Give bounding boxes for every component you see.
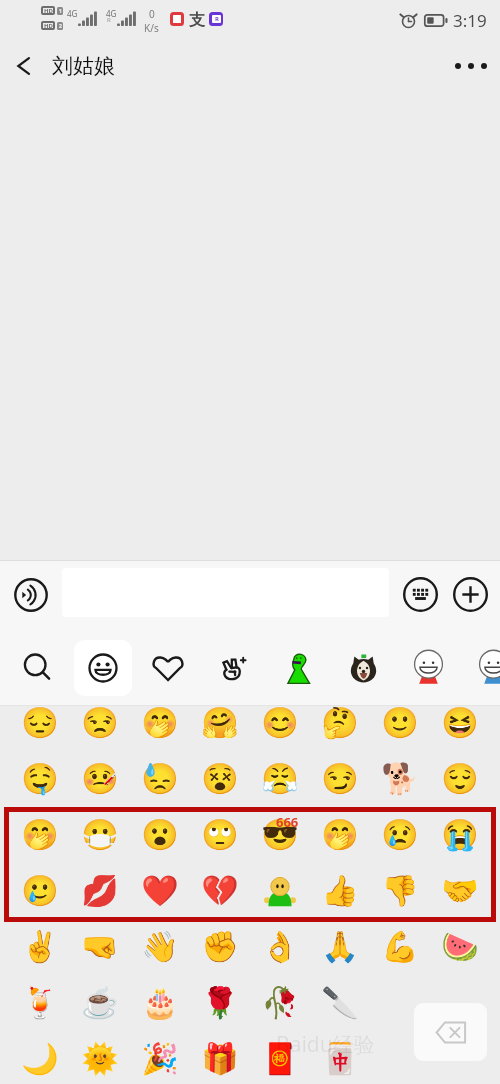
button[interactable]: Blue sticker pack — [464, 640, 500, 696]
button[interactable]: 🌹 — [190, 974, 250, 1030]
staticText: 🎂 — [141, 985, 179, 1020]
button[interactable]: Favourites — [139, 640, 197, 696]
staticText: 👍 — [321, 873, 359, 908]
staticText: 🙄 — [201, 817, 239, 852]
staticText: 🥲 — [21, 873, 59, 908]
button[interactable]: 🀄 — [310, 1030, 370, 1084]
staticText: 🍉 — [441, 929, 479, 964]
button[interactable]: 🤤 — [10, 750, 70, 806]
button[interactable]: 🌞 — [70, 1030, 130, 1084]
staticText: 😊 — [261, 705, 299, 740]
staticText: ✊ — [201, 929, 239, 964]
button[interactable]: 🙏 — [310, 918, 370, 974]
button[interactable]: 🐕 — [370, 750, 430, 806]
button[interactable]: 😔 — [10, 694, 70, 750]
button[interactable]: Smileys — [74, 640, 132, 696]
staticText: 🤗 — [201, 705, 239, 740]
button[interactable]: Red sticker pack — [399, 640, 457, 696]
button[interactable]: 😊 — [250, 694, 310, 750]
button[interactable]: ✊ — [190, 918, 250, 974]
button[interactable]: Search — [9, 640, 67, 696]
button[interactable]: More — [450, 574, 491, 615]
staticText: 😒 — [81, 705, 119, 740]
button[interactable]: Backspace — [414, 1003, 487, 1061]
staticText: 💔 — [201, 873, 239, 908]
button[interactable]: 😒 — [70, 694, 130, 750]
button[interactable]: 🤒 — [70, 750, 130, 806]
staticText: ☕ — [81, 985, 119, 1020]
button[interactable]: 🎉 — [130, 1030, 190, 1084]
staticText: 🤭 — [141, 705, 179, 740]
button[interactable]: 😎 — [250, 806, 310, 862]
staticText: 😆 — [441, 705, 479, 740]
button[interactable]: 😭 — [430, 806, 490, 862]
button[interactable]: Back — [0, 40, 48, 92]
button[interactable]: 🤝 — [430, 862, 490, 918]
button[interactable]: 🤭 — [310, 806, 370, 862]
button[interactable]: 😵 — [190, 750, 250, 806]
button[interactable]: 😷 — [70, 806, 130, 862]
button[interactable]: 👎 — [370, 862, 430, 918]
button[interactable]: 🎂 — [130, 974, 190, 1030]
button[interactable]: 😮 — [130, 806, 190, 862]
button[interactable]: Husky stickers — [334, 640, 392, 696]
button[interactable]: 😆 — [430, 694, 490, 750]
staticText: 3:19 — [453, 9, 487, 32]
button[interactable]: 🙂 — [370, 694, 430, 750]
staticText: 🤝 — [441, 873, 479, 908]
button[interactable]: More options — [442, 40, 500, 92]
button[interactable]: 😏 — [310, 750, 370, 806]
button[interactable]: 🤭 — [130, 694, 190, 750]
staticText: 😌 — [441, 761, 479, 796]
button[interactable]: Keyboard — [400, 574, 441, 615]
button[interactable]: 🥲 — [10, 862, 70, 918]
staticText: 👎 — [381, 873, 419, 908]
button[interactable]: 🤔 — [310, 694, 370, 750]
button[interactable]: 💋 — [70, 862, 130, 918]
staticText: 🧧 — [261, 1041, 299, 1076]
staticText: 🐕 — [381, 761, 419, 796]
button[interactable]: 🍉 — [430, 918, 490, 974]
button[interactable]: 🥀 — [250, 974, 310, 1030]
button[interactable]: ❤ — [130, 862, 190, 918]
button[interactable]: 🧧 — [250, 1030, 310, 1084]
staticText: 🎉 — [141, 1041, 179, 1076]
button[interactable]: 🤭 — [10, 806, 70, 862]
button[interactable]: Voice input — [9, 573, 52, 616]
button[interactable]: 👍 — [310, 862, 370, 918]
staticText: 👋 — [141, 929, 179, 964]
button[interactable]: 💪 — [370, 918, 430, 974]
button[interactable]: 😢 — [370, 806, 430, 862]
button[interactable]: 👋 — [130, 918, 190, 974]
staticText: 😓 — [141, 761, 179, 796]
staticText: 🙂 — [381, 705, 419, 740]
button[interactable]: ✌ — [10, 918, 70, 974]
button[interactable]: 🌙 — [10, 1030, 70, 1084]
button[interactable]: 🙄 — [190, 806, 250, 862]
staticText: 4G — [106, 8, 117, 19]
button[interactable]: 💔 — [190, 862, 250, 918]
staticText: 🌞 — [81, 1041, 119, 1076]
staticText: 😮 — [141, 817, 179, 852]
button[interactable]: ☕ — [70, 974, 130, 1030]
staticText: 😤 — [261, 761, 299, 796]
button[interactable]: 😌 — [430, 750, 490, 806]
button[interactable]: 🤗 — [190, 694, 250, 750]
staticText: 🀄 — [321, 1041, 359, 1076]
staticText: 😷 — [81, 817, 119, 852]
button[interactable]: 👌 — [250, 918, 310, 974]
button[interactable]: 🔪 — [310, 974, 370, 1030]
button[interactable]: Gestures — [204, 640, 262, 696]
staticText: 🤭 — [21, 817, 59, 852]
staticText: 🎁 — [201, 1041, 239, 1076]
button[interactable]: 😓 — [130, 750, 190, 806]
staticText: 🌹 — [201, 985, 239, 1020]
staticText: 🤜 — [81, 929, 119, 964]
button[interactable]: Dinosaur stickers — [269, 640, 327, 696]
button[interactable]: 🎁 — [190, 1030, 250, 1084]
button[interactable]: 🤜 — [70, 918, 130, 974]
button[interactable]: 😤 — [250, 750, 310, 806]
button[interactable]: 🍹 — [10, 974, 70, 1030]
button[interactable] — [250, 862, 310, 918]
